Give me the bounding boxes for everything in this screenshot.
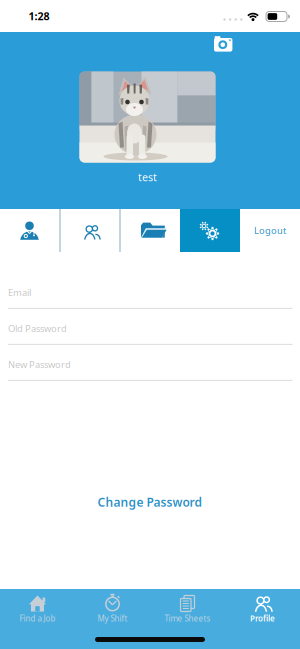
staticText: My Shift bbox=[97, 613, 127, 624]
staticText: Change Password bbox=[97, 494, 202, 510]
staticText: Time Sheets bbox=[164, 613, 210, 624]
button[interactable]: New Password bbox=[0, 349, 300, 385]
staticText: Email bbox=[8, 286, 31, 299]
button[interactable] bbox=[60, 209, 120, 252]
button[interactable] bbox=[207, 32, 239, 58]
button[interactable]: Logout bbox=[240, 209, 300, 252]
staticText: Logout bbox=[254, 224, 286, 237]
button[interactable] bbox=[120, 209, 180, 252]
button[interactable] bbox=[180, 209, 240, 252]
button[interactable]: Change Password bbox=[50, 487, 250, 517]
staticText: Profile bbox=[250, 613, 275, 624]
button[interactable]: My Shift bbox=[75, 589, 150, 649]
button[interactable]: Time Sheets bbox=[150, 589, 225, 649]
button[interactable] bbox=[0, 209, 60, 252]
staticText: 1:28 bbox=[28, 9, 49, 23]
staticText: Old Password bbox=[8, 322, 67, 335]
staticText: Find a Job bbox=[19, 613, 55, 624]
button[interactable]: Email bbox=[0, 277, 300, 313]
button[interactable]: Old Password bbox=[0, 313, 300, 349]
button[interactable]: Profile bbox=[225, 589, 300, 649]
staticText: test bbox=[138, 170, 157, 184]
staticText: New Password bbox=[8, 358, 71, 371]
button[interactable]: Find a Job bbox=[0, 589, 75, 649]
